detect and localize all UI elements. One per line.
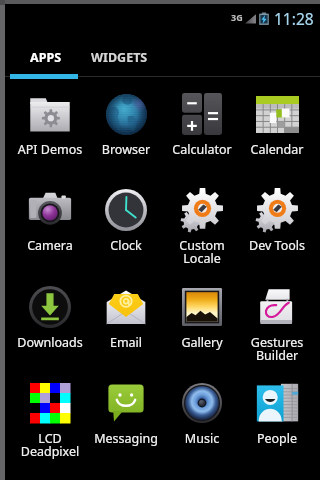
staticText: Gestures Builder — [239, 334, 315, 363]
button[interactable]: Calculator — [164, 91, 240, 163]
button[interactable]: WIDGETS — [68, 40, 154, 79]
staticText: API Demos — [12, 141, 88, 158]
button[interactable]: Messaging — [88, 380, 164, 452]
button[interactable]: Music — [164, 380, 240, 452]
button[interactable]: LCD Deadpixel — [12, 380, 88, 452]
staticText: APPS — [30, 49, 62, 66]
staticText: LCD Deadpixel — [12, 430, 88, 459]
staticText: Messaging — [88, 430, 164, 447]
staticText: Calculator — [164, 141, 240, 158]
staticText: Downloads — [12, 334, 88, 351]
button[interactable]: People — [239, 380, 315, 452]
button[interactable]: APPS — [10, 40, 78, 79]
button[interactable]: Gallery — [164, 284, 240, 356]
button[interactable]: Gestures Builder — [239, 284, 315, 356]
button[interactable]: Dev Tools — [239, 187, 315, 259]
button[interactable]: Calendar — [239, 91, 315, 163]
staticText: People — [239, 430, 315, 447]
staticText: Clock — [88, 237, 164, 254]
button[interactable]: Browser — [88, 91, 164, 163]
button[interactable]: Clock — [88, 187, 164, 259]
staticText: Gallery — [164, 334, 240, 351]
staticText: Calendar — [239, 141, 315, 158]
button[interactable]: Camera — [12, 187, 88, 259]
staticText: Music — [164, 430, 240, 447]
staticText: Camera — [12, 237, 88, 254]
staticText: WIDGETS — [91, 49, 148, 66]
button[interactable]: Custom Locale — [164, 187, 240, 259]
button[interactable]: Downloads — [12, 284, 88, 356]
staticText: Custom Locale — [164, 237, 240, 266]
staticText: Dev Tools — [239, 237, 315, 254]
staticText: 11:28 — [274, 8, 314, 29]
button[interactable]: API Demos — [12, 91, 88, 163]
staticText: Browser — [88, 141, 164, 158]
staticText: Email — [88, 334, 164, 351]
staticText: 3G — [231, 11, 243, 23]
button[interactable]: Email — [88, 284, 164, 356]
